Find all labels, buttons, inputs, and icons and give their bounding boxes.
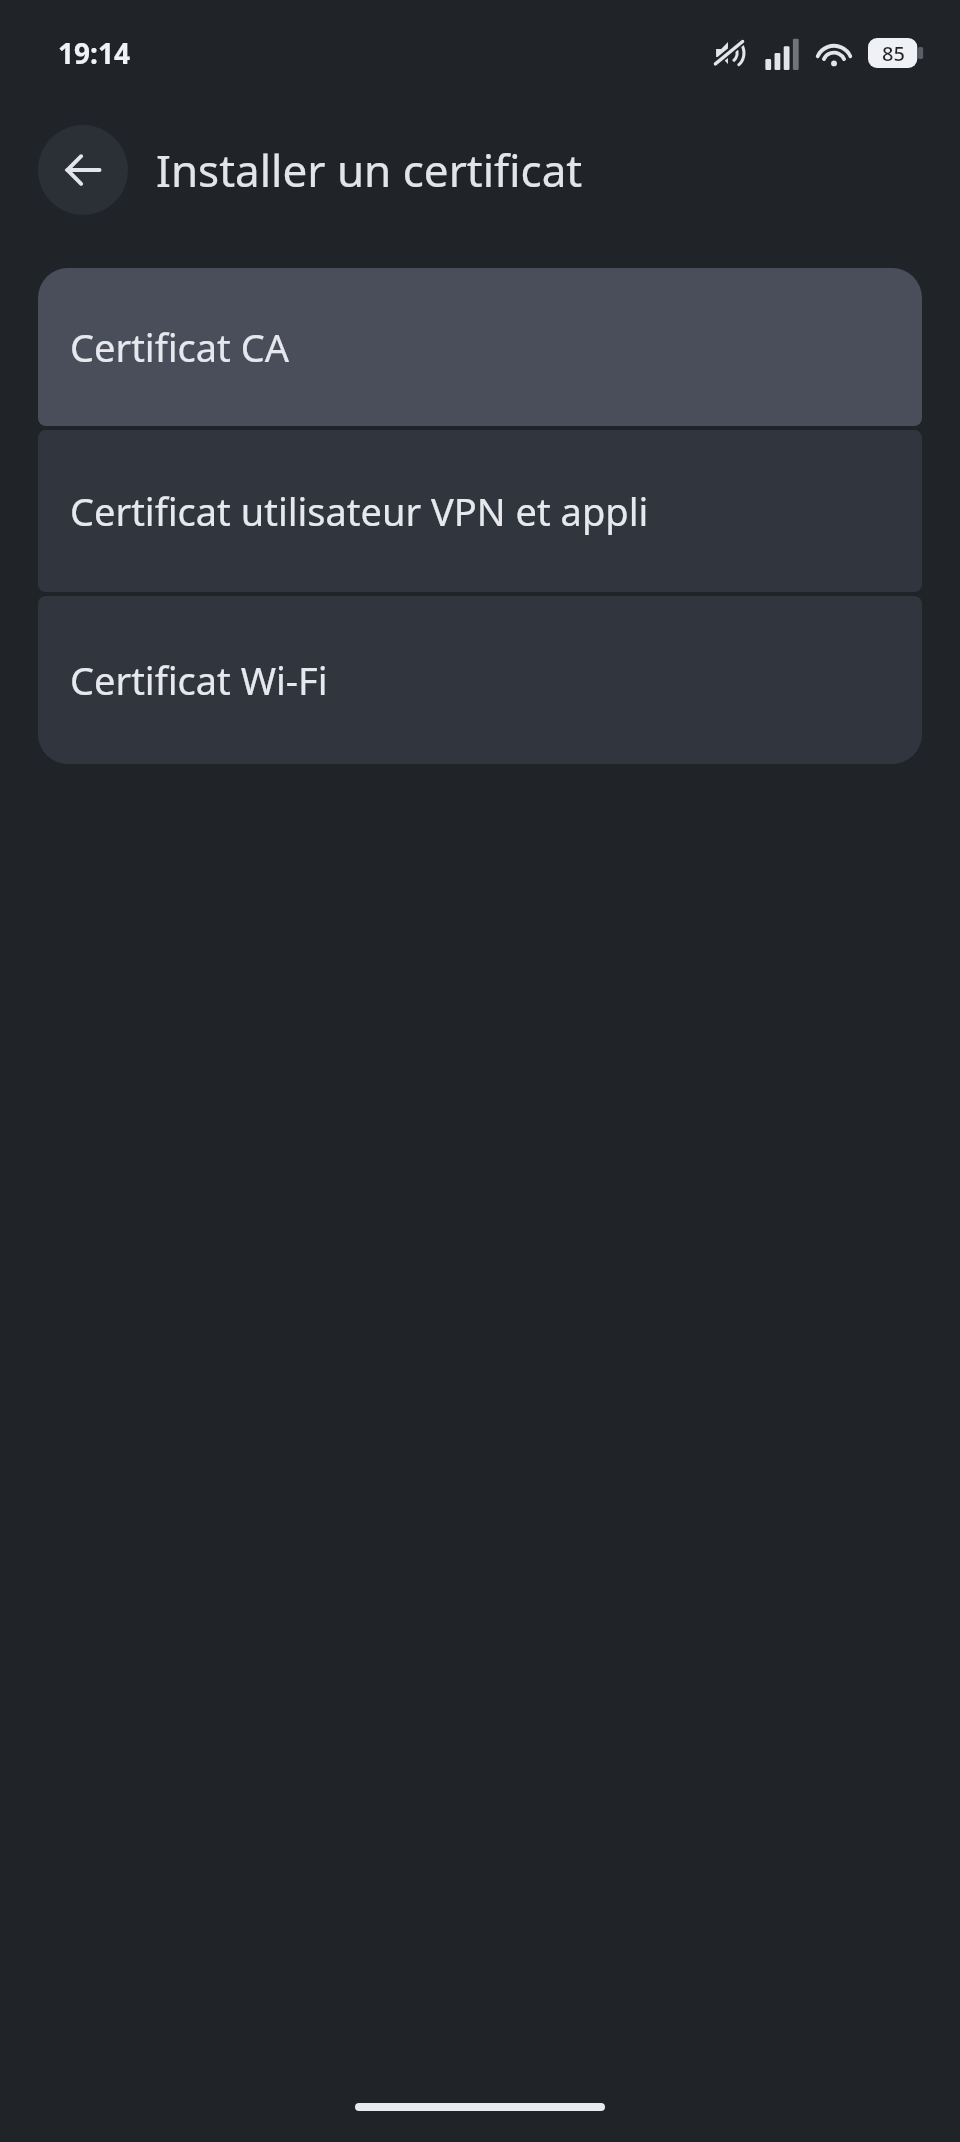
button[interactable]: Certificat CA — [38, 268, 922, 426]
button[interactable]: Retour — [38, 125, 128, 215]
staticText: 85 — [882, 40, 905, 67]
staticText: Installer un certificat — [156, 140, 583, 200]
button[interactable]: Certificat Wi-Fi — [38, 596, 922, 764]
staticText: 19:14 — [58, 34, 130, 72]
button[interactable]: Certificat utilisateur VPN et appli — [38, 430, 922, 592]
staticText: Certificat utilisateur VPN et appli — [70, 485, 649, 537]
staticText: Certificat CA — [70, 321, 289, 373]
staticText: Certificat Wi-Fi — [70, 654, 328, 706]
